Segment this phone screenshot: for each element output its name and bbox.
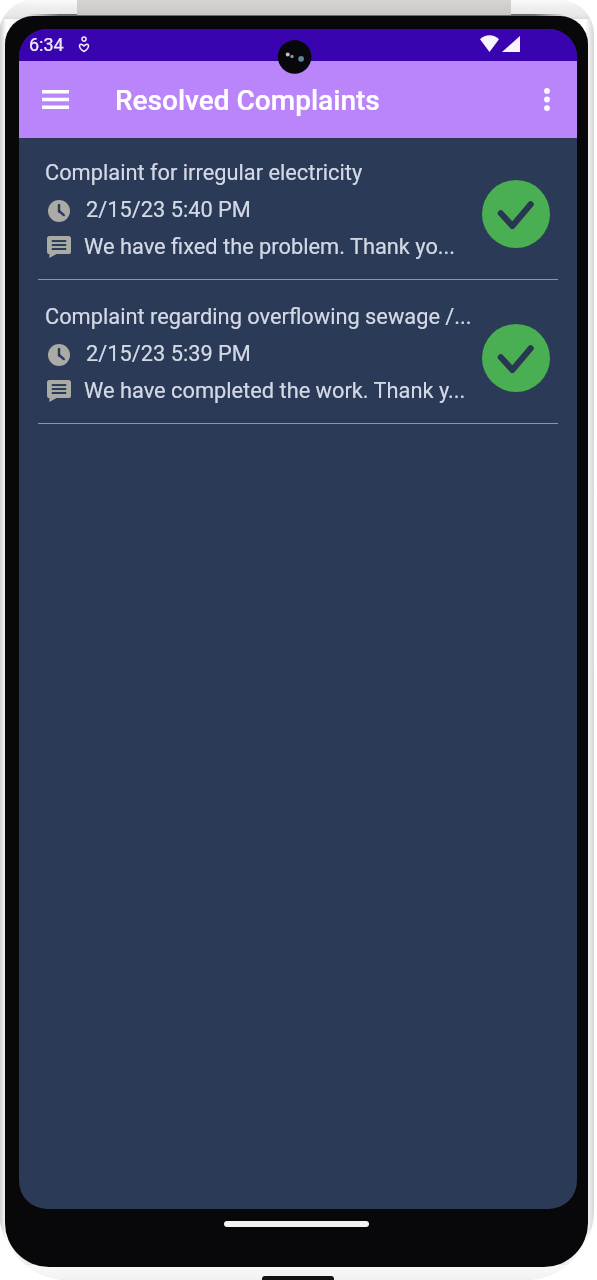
staticText: 2/15/23 5:40 PM [86,197,251,223]
button[interactable]: More options [523,75,571,123]
button[interactable]: Complaint for irregular electricity [19,137,577,280]
staticText: Complaint regarding overflowing sewage /… [45,304,472,330]
staticText: We have completed the work. Thank y... [84,378,466,404]
staticText: 2/15/23 5:39 PM [86,341,251,367]
staticText: We have fixed the problem. Thank yo... [84,234,456,260]
staticText: Complaint for irregular electricity [45,160,363,186]
staticText: Resolved Complaints [115,84,380,117]
staticText: 6:34 [29,34,64,55]
button[interactable]: Open navigation menu [31,75,79,123]
button[interactable]: Complaint regarding overflowing sewage /… [19,281,577,424]
